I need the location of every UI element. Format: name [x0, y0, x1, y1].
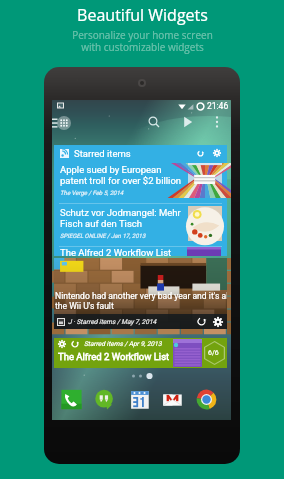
button[interactable]: Refresh [197, 317, 206, 326]
staticText: The Alfred 2 Workflow List [58, 351, 170, 362]
button[interactable]: Settings [213, 317, 223, 327]
staticText: Starred items [74, 148, 131, 159]
staticText: Starred items / Apr 9, 2013 [84, 340, 162, 348]
staticText: Beautiful Widgets [77, 4, 208, 26]
button[interactable]: Phone [61, 389, 82, 410]
button[interactable]: Chrome [196, 389, 217, 410]
staticText: Nintendo had another very bad year and i… [55, 291, 227, 311]
staticText: 6/6 [208, 349, 219, 357]
button[interactable]: Hangouts [94, 389, 115, 410]
button[interactable]: Schutz vor Jodmangel: Mehr Fisch auf den… [54, 204, 227, 246]
staticText: Personalize your home screen with custom… [72, 28, 213, 54]
button[interactable]: Apple sued by European patent troll for … [54, 161, 227, 203]
button[interactable]: More options [213, 115, 223, 130]
button[interactable]: Voice search [181, 115, 195, 129]
button[interactable]: Starred items [54, 145, 227, 256]
button[interactable]: Calendar [129, 389, 150, 410]
button[interactable]: All apps [57, 116, 71, 130]
button[interactable]: Gmail [162, 389, 183, 410]
button[interactable]: Settings [213, 149, 221, 157]
staticText: The Alfred 2 Workflow List [60, 247, 172, 256]
staticText: 21:46 [207, 101, 229, 111]
staticText: SPIEGEL ONLINE / Jan 17, 2013 [60, 232, 146, 239]
button[interactable]: Nintendo had another very bad year and i… [54, 258, 227, 329]
button[interactable]: Search [148, 116, 161, 129]
staticText: The Verge / Feb 5, 2014 [60, 189, 124, 196]
button[interactable]: Refresh [197, 150, 204, 157]
staticText: Apple sued by European patent troll for … [60, 164, 182, 186]
button[interactable]: Menu [52, 118, 58, 129]
button[interactable]: Starred items / Apr 9, 2013 [54, 338, 227, 368]
staticText: J · Starred items / May 7, 2014 [68, 318, 157, 326]
staticText: Schutz vor Jodmangel: Mehr Fisch auf den… [60, 207, 181, 229]
